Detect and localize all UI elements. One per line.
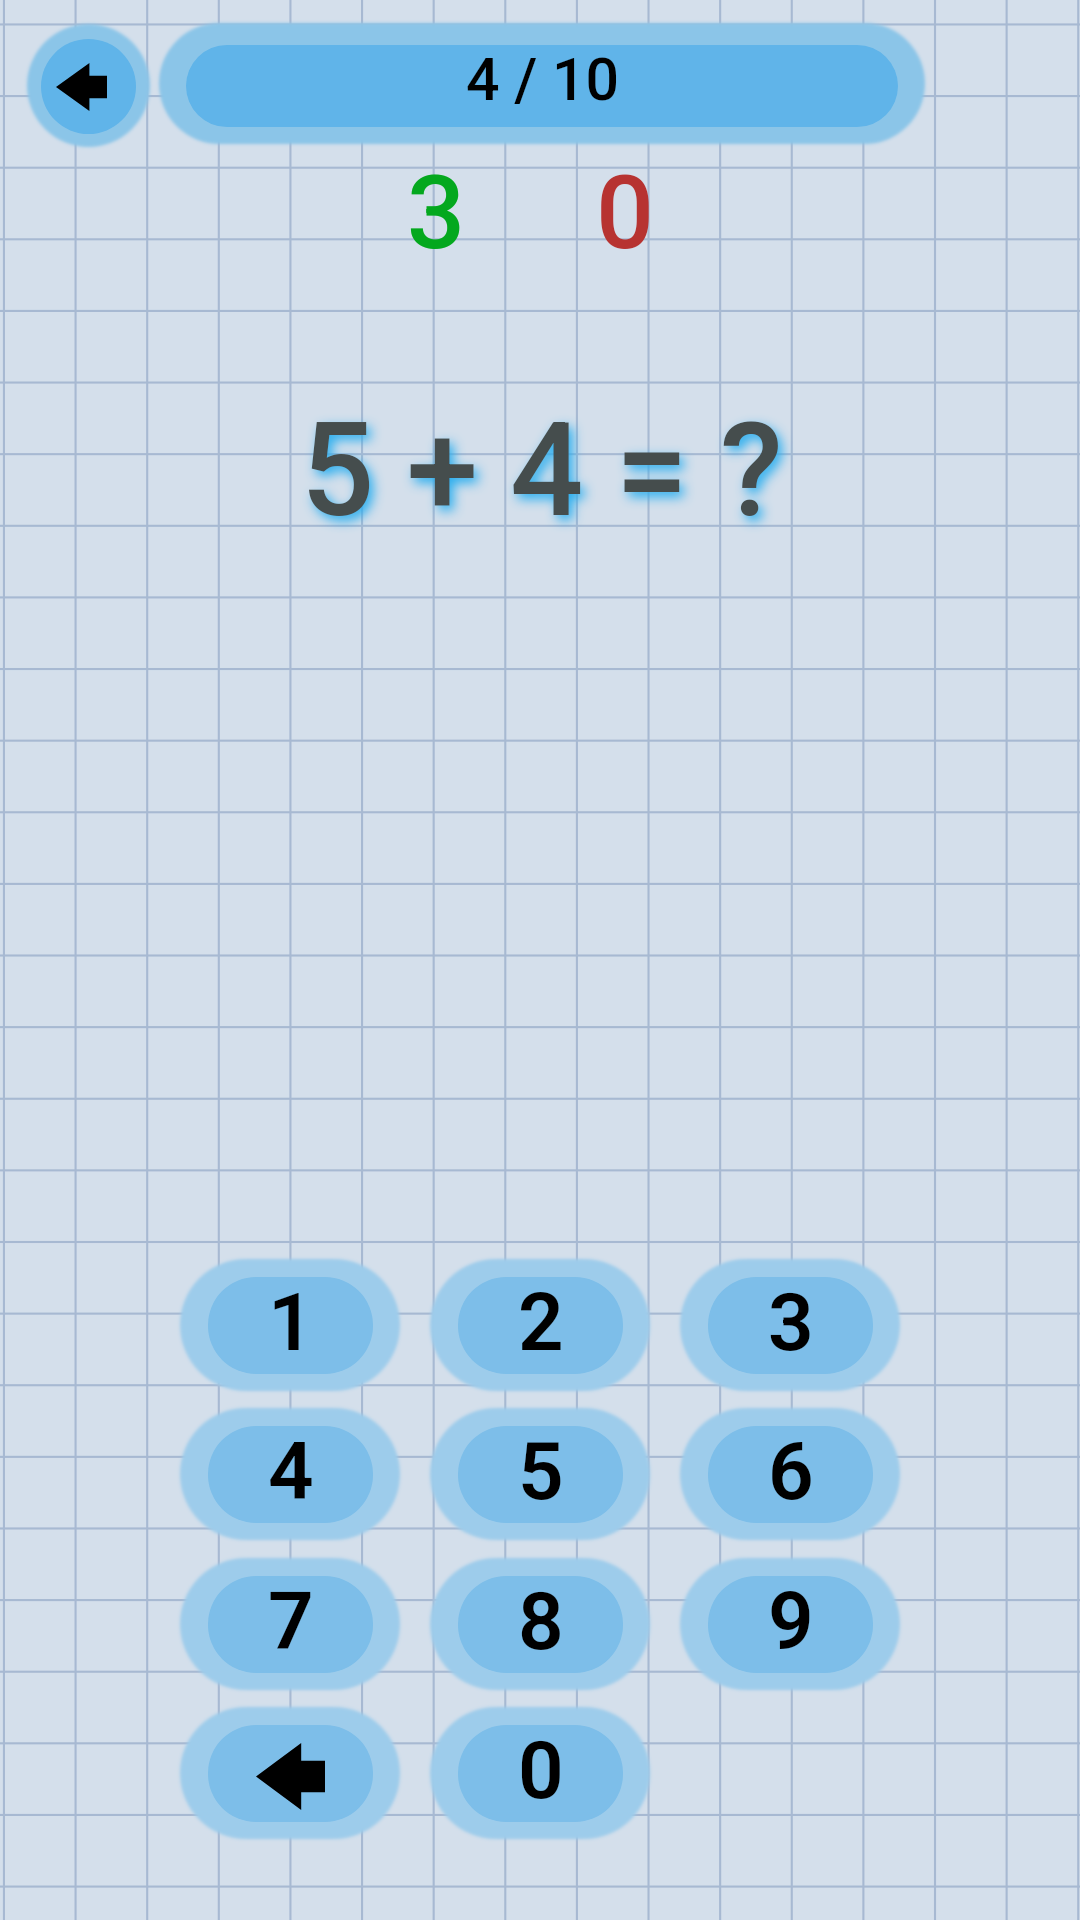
staticText: 3 <box>768 1277 814 1370</box>
button[interactable]: 9 <box>680 1558 900 1690</box>
button[interactable]: 8 <box>430 1558 650 1690</box>
staticText: 0 <box>518 1725 564 1818</box>
staticText: 6 <box>768 1426 814 1519</box>
button[interactable]: Back <box>27 24 150 147</box>
button[interactable]: Backspace <box>180 1707 400 1839</box>
staticText: 9 <box>768 1576 814 1669</box>
button[interactable]: 4 <box>180 1408 400 1540</box>
staticText: 0 <box>596 153 654 273</box>
staticText: 8 <box>518 1576 564 1669</box>
button[interactable]: 1 <box>180 1259 400 1391</box>
staticText: 5 + 4 = ? <box>301 395 783 546</box>
button[interactable]: 3 <box>680 1259 900 1391</box>
staticText: 2 <box>518 1277 564 1370</box>
button[interactable]: 0 <box>430 1707 650 1839</box>
staticText: 5 <box>518 1426 564 1519</box>
button[interactable]: 2 <box>430 1259 650 1391</box>
button[interactable]: 7 <box>180 1558 400 1690</box>
staticText: 4 / 10 <box>466 45 619 114</box>
button[interactable]: 5 <box>430 1408 650 1540</box>
staticText: 4 <box>268 1426 314 1519</box>
staticText: 3 <box>407 153 465 273</box>
button[interactable]: 6 <box>680 1408 900 1540</box>
button[interactable]: 4 / 10 <box>159 23 925 144</box>
staticText: 1 <box>268 1277 314 1370</box>
staticText: 7 <box>268 1576 314 1669</box>
